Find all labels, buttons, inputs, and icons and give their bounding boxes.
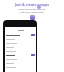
button[interactable] [6, 37, 35, 41]
button[interactable] [6, 33, 35, 37]
button[interactable]: Profile [37, 5, 41, 9]
staticText: Join & create groups [3, 2, 61, 7]
button[interactable] [6, 53, 35, 57]
button[interactable] [6, 61, 35, 65]
button[interactable]: App icon [30, 15, 35, 20]
staticText: Find communities near you and start chat… [9, 8, 55, 14]
button[interactable] [6, 45, 35, 49]
button[interactable] [6, 49, 35, 53]
button[interactable] [6, 41, 35, 45]
button[interactable] [6, 57, 35, 61]
button[interactable] [6, 65, 35, 69]
